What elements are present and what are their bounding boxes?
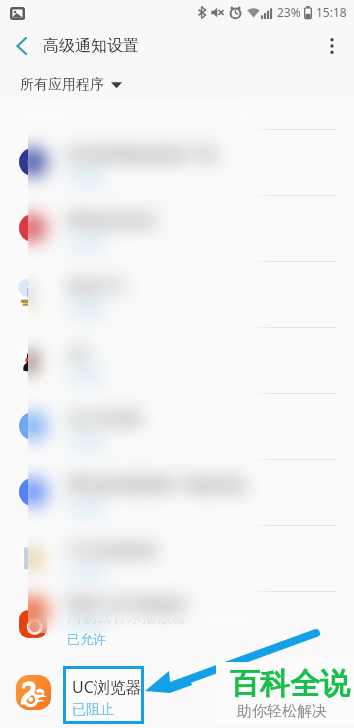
staticText: 天天快报新闻	[67, 542, 157, 561]
button[interactable]: 支付宝转账	[28, 393, 263, 459]
staticText: 新浪微博极速版客户端	[67, 146, 217, 165]
staticText: 已允许	[67, 301, 106, 317]
staticText: 网易云音乐播放器	[67, 608, 187, 627]
button[interactable]	[0, 657, 354, 723]
staticText: 天天快报新闻	[67, 542, 157, 561]
button[interactable]: 腾讯新闻视频客户端服务版	[0, 459, 354, 525]
button[interactable]: 墨迹天气	[28, 261, 263, 327]
staticText: 23%	[277, 4, 301, 20]
staticText: 已允许	[67, 235, 106, 251]
staticText: 腾讯新闻视频客户端服务版	[67, 476, 247, 495]
staticText: 已允许	[67, 301, 106, 317]
staticText: QQ	[67, 343, 91, 363]
staticText: 已允许	[67, 367, 106, 383]
staticText: 百科全说	[230, 665, 350, 703]
staticText: 高级通知设置	[43, 36, 139, 56]
staticText: 支付宝转账	[67, 410, 142, 429]
staticText: 所有应用程序	[20, 76, 104, 94]
staticText: 已允许	[67, 433, 106, 449]
button[interactable]: 所有应用程序	[0, 68, 354, 102]
button[interactable]: 新浪微博极速版客户端	[0, 129, 354, 195]
staticText: UC浏览器	[72, 676, 142, 698]
button[interactable]: 网易云音乐播放器	[28, 591, 263, 633]
staticText: 已允许	[67, 619, 106, 633]
staticText: 支付宝转账	[67, 410, 142, 429]
staticText: 已允许	[67, 631, 106, 647]
staticText: 已允许	[67, 433, 106, 449]
button[interactable]: QQ	[28, 327, 263, 393]
button[interactable]: 新浪微博极速版客户端	[28, 129, 263, 195]
button[interactable]: 天天快报新闻	[28, 525, 263, 591]
staticText: 已允许	[67, 169, 106, 185]
button[interactable]: Back	[0, 24, 44, 68]
staticText: 已允许	[67, 499, 106, 515]
staticText: 已允许	[67, 367, 106, 383]
button[interactable]: 墨迹天气	[0, 261, 354, 327]
button[interactable]: QQ	[0, 327, 354, 393]
button[interactable]: 腾讯新闻视频客户端服务版	[28, 459, 263, 525]
staticText: 新浪微博极速版客户端	[67, 146, 217, 165]
staticText: 已允许	[67, 169, 106, 185]
staticText: 已允许	[67, 499, 106, 515]
staticText: 已允许	[67, 235, 106, 251]
staticText: 腾讯新闻视频客户端服务版	[67, 476, 247, 495]
staticText: 已允许	[67, 565, 106, 581]
button[interactable]: 网易新闻资讯	[0, 195, 354, 261]
staticText: 助你轻松解决	[237, 702, 327, 721]
staticText: 墨迹天气	[67, 278, 127, 297]
button[interactable]: More options	[310, 24, 354, 68]
staticText: 墨迹天气	[67, 278, 127, 297]
button[interactable]: 网易云音乐播放器	[0, 591, 354, 657]
staticText: QQ	[67, 343, 91, 363]
staticText: 网易新闻资讯	[67, 212, 157, 231]
staticText: 15:18	[316, 4, 347, 20]
staticText: 已允许	[67, 565, 106, 581]
button[interactable]: 天天快报新闻	[0, 525, 354, 591]
button[interactable]: 支付宝转账	[0, 393, 354, 459]
button[interactable]: 网易新闻资讯	[28, 195, 263, 261]
staticText: 已阻止	[72, 701, 114, 719]
staticText: 网易云音乐播放器	[67, 596, 187, 615]
staticText: 网易新闻资讯	[67, 212, 157, 231]
